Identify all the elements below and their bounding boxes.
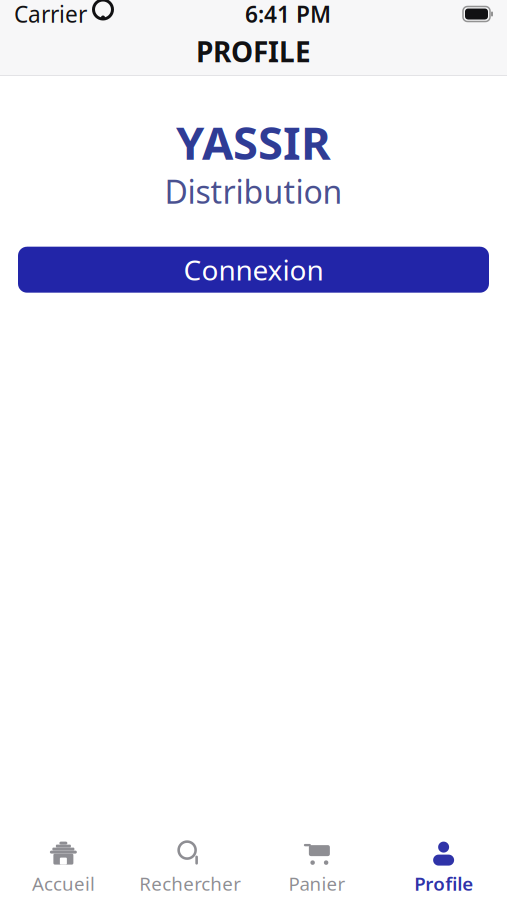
button[interactable]: Rechercher	[127, 836, 254, 900]
staticText: Rechercher	[139, 871, 241, 896]
button[interactable]: Accueil	[0, 836, 127, 900]
staticText: Distribution	[164, 170, 342, 213]
button[interactable]: Profile	[380, 836, 507, 900]
button[interactable]: Connexion	[18, 247, 489, 293]
button[interactable]: Panier	[253, 836, 380, 900]
staticText: 6:41 PM	[245, 0, 331, 29]
staticText: Profile	[414, 871, 473, 896]
staticText: Carrier	[14, 0, 87, 29]
staticText: YASSIR	[176, 112, 331, 172]
staticText: Connexion	[183, 251, 323, 288]
staticText: PROFILE	[196, 33, 311, 70]
staticText: Accueil	[32, 871, 95, 896]
staticText: Panier	[288, 871, 345, 896]
